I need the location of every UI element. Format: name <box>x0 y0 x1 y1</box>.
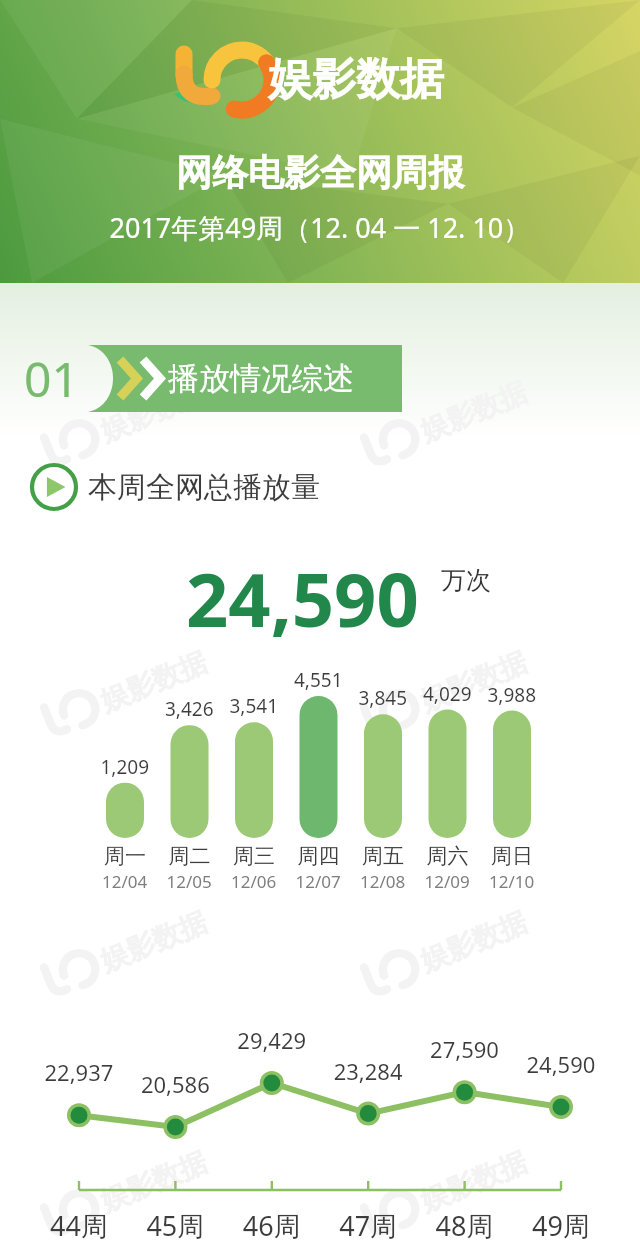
button[interactable]: 网络电影全网周报 <box>0 0 640 1260</box>
